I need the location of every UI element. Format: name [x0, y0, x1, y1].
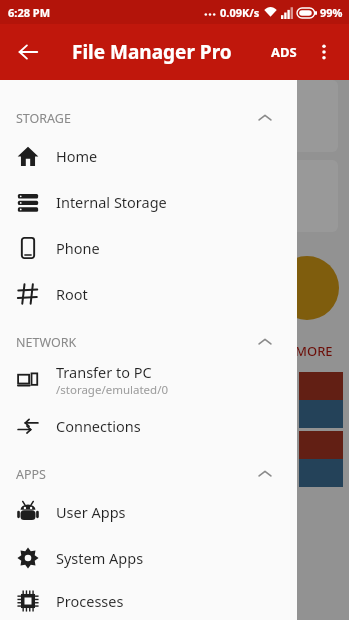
staticText: Internal Storage: [56, 192, 167, 212]
button[interactable]: Home: [0, 133, 297, 179]
staticText: Home: [56, 146, 98, 166]
button[interactable]: More options: [303, 31, 345, 73]
staticText: 99%: [320, 5, 343, 20]
button[interactable]: Connections: [0, 403, 297, 449]
button[interactable]: Back: [6, 30, 50, 74]
button[interactable]: Root: [0, 271, 297, 317]
staticText: NETWORK: [16, 334, 77, 351]
staticText: Transfer to PC: [56, 362, 152, 382]
button[interactable]: Processes: [0, 581, 297, 620]
button[interactable]: [208, 160, 338, 232]
button[interactable]: Internal Storage: [0, 179, 297, 225]
staticText: APPS: [16, 466, 46, 483]
button[interactable]: STORAGE: [0, 103, 297, 133]
staticText: Root: [56, 284, 88, 304]
staticText: 6:28 PM: [8, 5, 51, 20]
staticText: Connections: [56, 416, 141, 436]
button[interactable]: Phone: [0, 225, 297, 271]
staticText: /storage/emulated/0: [56, 382, 169, 398]
staticText: STORAGE: [16, 110, 71, 127]
staticText: File Manager Pro: [72, 39, 232, 65]
button[interactable]: APPS: [0, 459, 297, 489]
staticText: System Apps: [56, 548, 144, 568]
button[interactable]: System Apps: [0, 535, 297, 581]
button[interactable]: [208, 80, 338, 152]
button[interactable]: Transfer to PC: [0, 357, 297, 403]
staticText: Processes: [56, 591, 124, 611]
staticText: 0.09K/s: [220, 5, 260, 20]
button[interactable]: User Apps: [0, 489, 297, 535]
button[interactable]: ADS: [265, 35, 303, 69]
staticText: MORE: [295, 342, 333, 360]
button[interactable]: NETWORK: [0, 327, 297, 357]
staticText: User Apps: [56, 502, 126, 522]
staticText: Phone: [56, 238, 100, 258]
staticText: ADS: [271, 43, 297, 61]
